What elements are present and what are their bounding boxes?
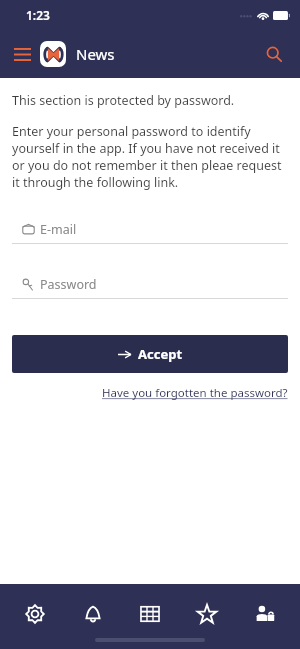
button[interactable]: Settings [13,592,57,636]
staticText: This section is protected by password. [12,92,235,109]
button[interactable]: Password [12,276,288,299]
button[interactable]: Favourites [185,592,229,636]
staticText: Enter your personal password to identify… [12,123,288,191]
button[interactable]: Account [243,592,287,636]
staticText: E-mail [40,221,77,238]
button[interactable]: Search [258,38,290,70]
staticText: News [76,44,115,64]
button[interactable]: Menu [8,40,36,68]
button[interactable]: Notifications [71,592,115,636]
staticText: Accept [138,345,183,363]
staticText: 1:23 [26,7,50,23]
button[interactable]: Have you forgotten the password? [102,385,288,401]
button[interactable]: E-mail [12,221,288,244]
button[interactable]: Accept [12,335,288,373]
staticText: Have you forgotten the password? [102,385,288,401]
staticText: Password [40,276,97,293]
button[interactable]: Table [128,592,172,636]
